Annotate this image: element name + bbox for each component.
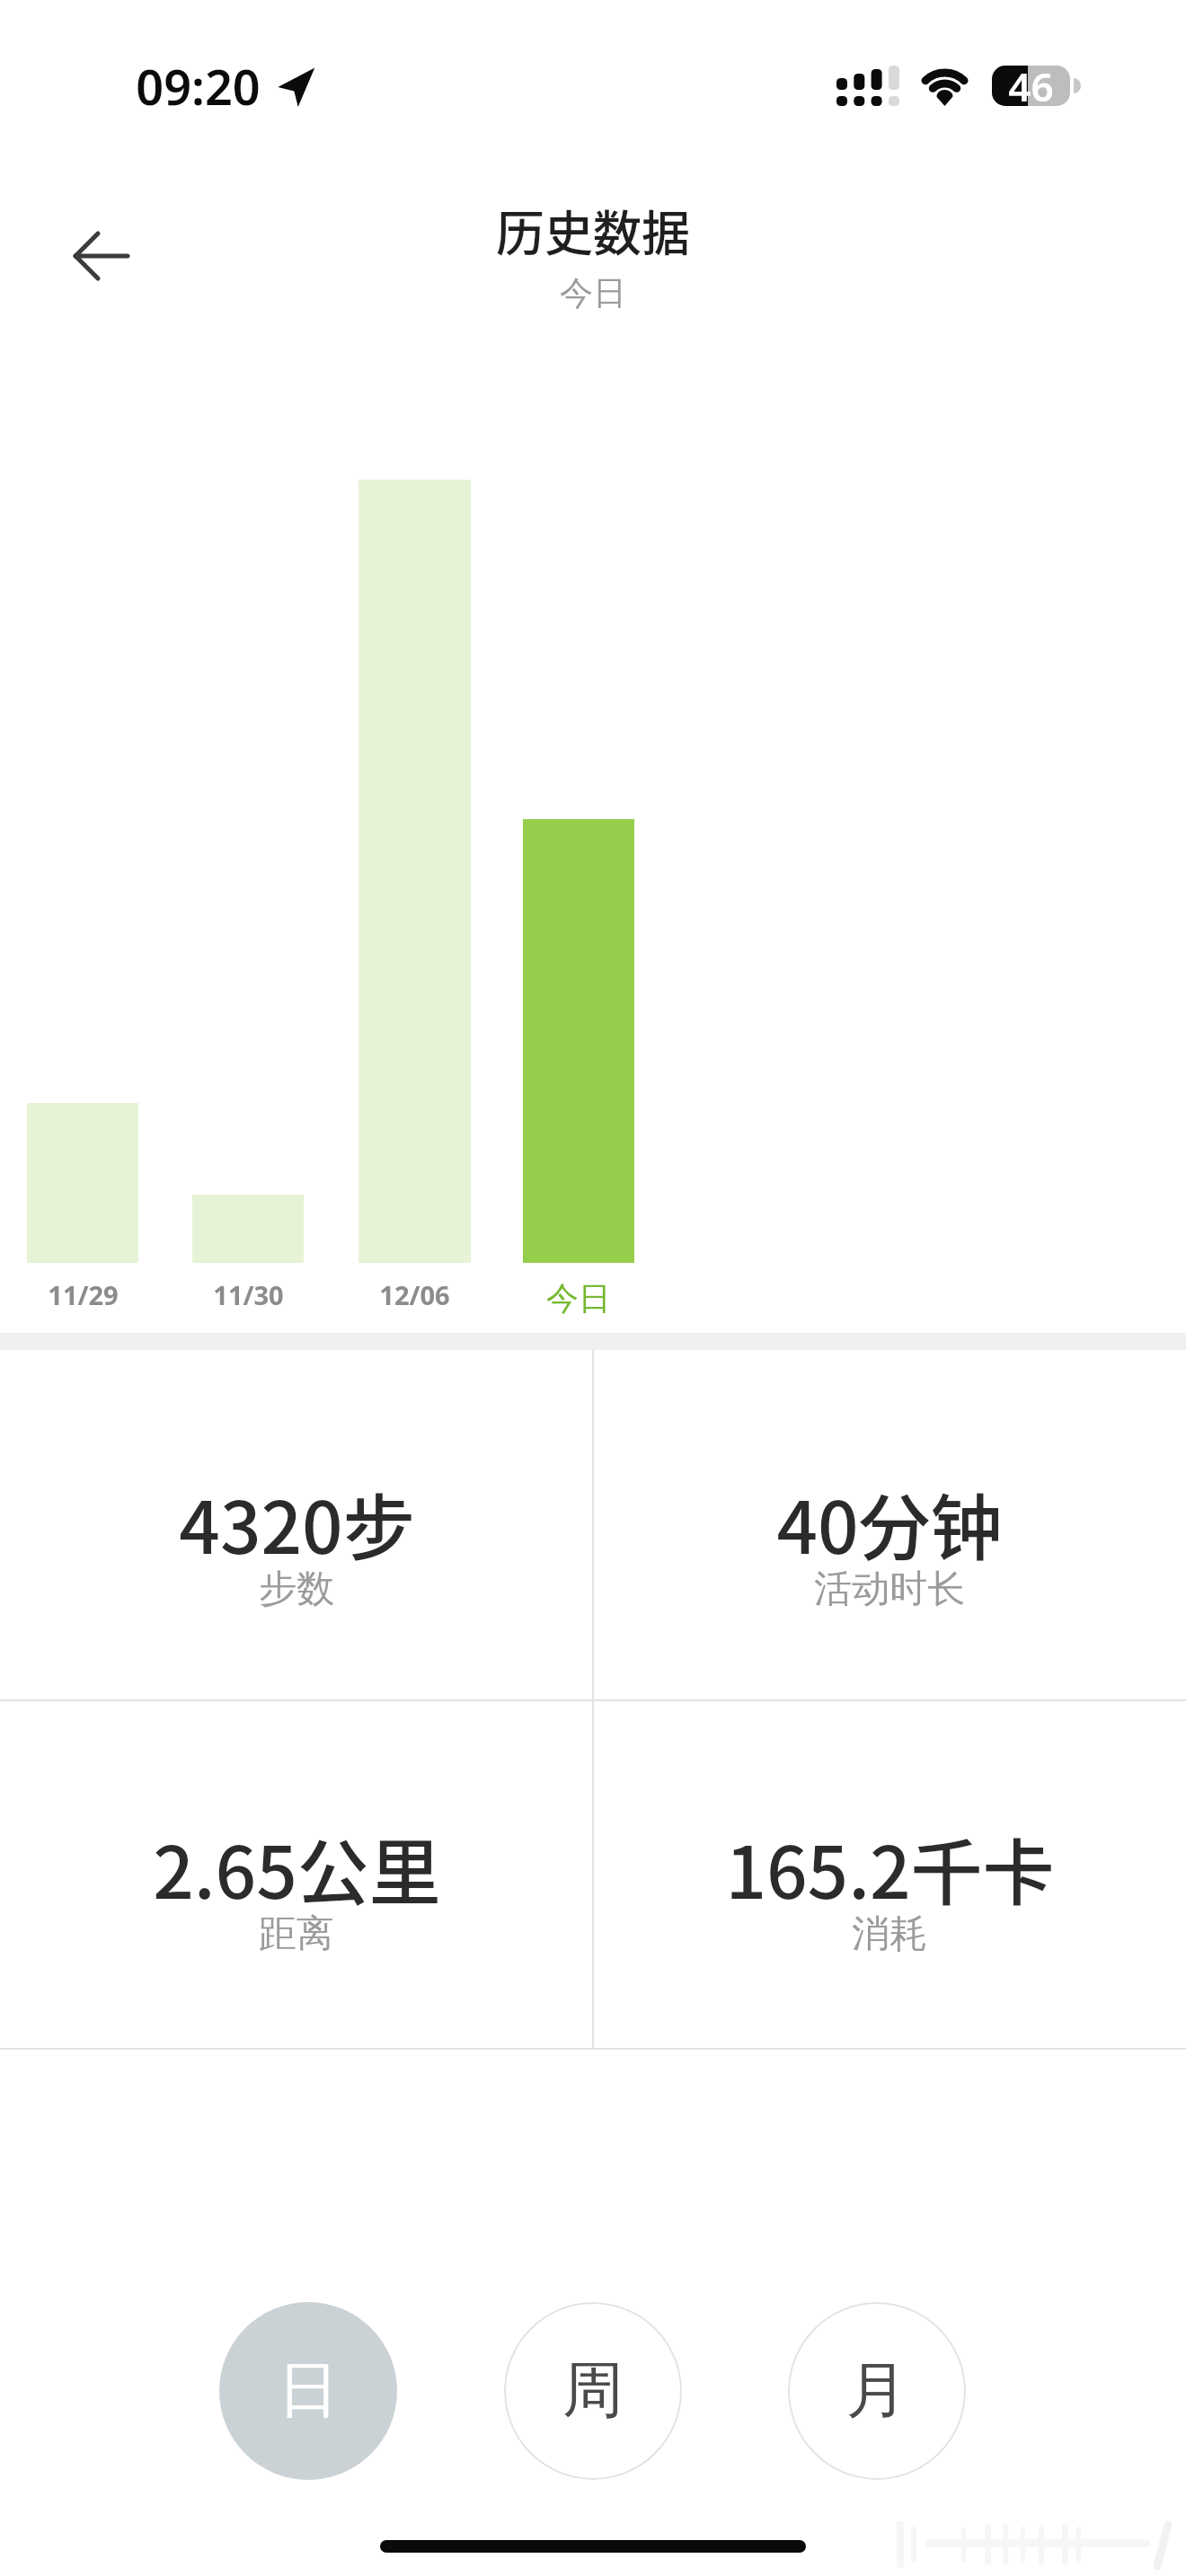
staticText: 46 xyxy=(1008,59,1054,113)
button[interactable]: 日 xyxy=(219,2302,397,2480)
staticText: 历史数据 xyxy=(496,195,690,265)
staticText: 今日 xyxy=(546,1278,611,1319)
button[interactable]: 月 xyxy=(788,2302,966,2480)
staticText: 周 xyxy=(562,2352,624,2430)
staticText: 4320步 xyxy=(179,1470,415,1575)
staticText: 165.2千卡 xyxy=(725,1815,1055,1919)
staticText: 12/06 xyxy=(379,1277,450,1312)
staticText: 11/30 xyxy=(213,1277,284,1312)
staticText: 09:20 xyxy=(136,53,261,119)
staticText: 消耗 xyxy=(852,1910,927,1958)
staticText: 40分钟 xyxy=(776,1470,1003,1575)
button[interactable]: 周 xyxy=(504,2302,682,2480)
staticText: 11/29 xyxy=(48,1277,119,1312)
staticText: 步数 xyxy=(259,1566,334,1613)
staticText: 2.65公里 xyxy=(153,1815,441,1919)
button[interactable] xyxy=(57,214,146,298)
staticText: 日 xyxy=(278,2352,339,2430)
staticText: 距离 xyxy=(259,1910,334,1958)
staticText: 月 xyxy=(846,2352,907,2430)
staticText: 活动时长 xyxy=(814,1566,965,1613)
staticText: 今日 xyxy=(560,272,626,314)
